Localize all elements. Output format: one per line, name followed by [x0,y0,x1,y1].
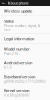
staticText: Status [4,18,14,24]
button[interactable]: Model number [0,44,50,58]
staticText: About phone [7,0,28,6]
staticText: Legal information [4,36,34,41]
staticText: 8.1.0 [4,66,12,69]
staticText: ← [2,1,5,5]
staticText: Pixel 2 XL [4,52,18,56]
button[interactable]: Kernel version [0,86,50,99]
button[interactable]: Wireless update [0,6,50,16]
staticText: Kernel version [4,88,29,93]
staticText: Phone number, signal, & more [4,24,40,31]
staticText: g8998-00202-1711230802 [4,80,46,83]
button[interactable]: Android version [0,58,50,72]
staticText: Android version [4,60,32,65]
staticText: Baseband version [4,74,35,79]
staticText: Wireless update [4,8,32,13]
staticText: Model number [4,46,30,51]
button[interactable]: Baseband version [0,72,50,86]
button[interactable]: Status [0,16,50,33]
button[interactable]: Legal information [0,34,50,44]
button[interactable]: Back [1,1,5,5]
staticText: 4.4.88-g3b9bfd1 [4,94,30,97]
